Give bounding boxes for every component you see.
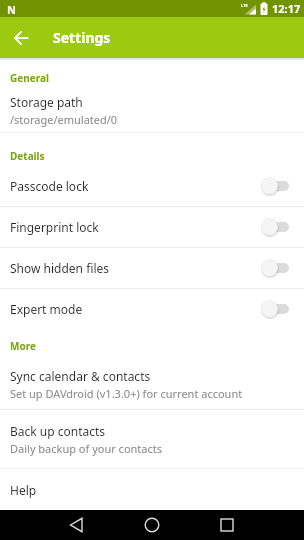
button[interactable]	[13, 30, 29, 46]
button[interactable]: Fingerprint lock	[0, 206, 304, 247]
staticText: Sync calendar & contacts	[10, 368, 151, 384]
staticText: Details	[10, 149, 45, 163]
staticText: LTE	[241, 3, 248, 8]
button[interactable]: Back up contacts	[0, 411, 304, 468]
button[interactable]: Help	[0, 470, 304, 510]
staticText: N	[7, 2, 16, 17]
button[interactable]: Sync calendar & contacts	[0, 359, 304, 409]
staticText: Back up contacts	[10, 423, 106, 439]
staticText: 12:17	[272, 1, 301, 16]
button[interactable]	[64, 512, 90, 538]
staticText: Settings	[53, 28, 111, 47]
staticText: Help	[10, 482, 37, 498]
staticText: Fingerprint lock	[10, 219, 99, 235]
staticText: Set up DAVdroid (v1.3.0+) for current ac…	[10, 386, 243, 401]
button[interactable]	[214, 512, 240, 538]
staticText: Expert mode	[10, 301, 83, 317]
button[interactable]: Expert mode	[0, 288, 304, 329]
button[interactable]: Show hidden files	[0, 247, 304, 288]
staticText: /storage/emulated/0	[10, 112, 118, 127]
staticText: Show hidden files	[10, 260, 109, 276]
staticText: General	[10, 71, 49, 85]
button[interactable]: Storage path	[0, 88, 304, 132]
staticText: More	[10, 339, 36, 353]
staticText: Passcode lock	[10, 178, 89, 194]
button[interactable]	[139, 512, 165, 538]
staticText: Storage path	[10, 94, 83, 110]
staticText: Daily backup of your contacts	[10, 441, 163, 456]
button[interactable]: Passcode lock	[0, 165, 304, 206]
